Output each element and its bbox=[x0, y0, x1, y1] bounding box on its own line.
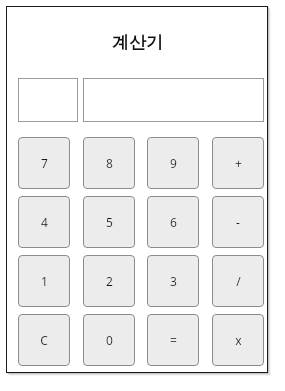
button[interactable]: 1 bbox=[18, 255, 70, 307]
staticText: 0 bbox=[106, 332, 113, 348]
staticText: / bbox=[236, 273, 241, 289]
button[interactable]: 3 bbox=[147, 255, 199, 307]
button[interactable]: 5 bbox=[83, 196, 135, 248]
staticText: 1 bbox=[41, 273, 48, 289]
button[interactable]: 2 bbox=[83, 255, 135, 307]
button[interactable]: C bbox=[18, 314, 70, 366]
staticText: 2 bbox=[106, 273, 113, 289]
button[interactable] bbox=[83, 78, 264, 122]
staticText: x bbox=[235, 332, 242, 348]
button[interactable]: / bbox=[212, 255, 264, 307]
button[interactable]: = bbox=[147, 314, 199, 366]
button[interactable]: 7 bbox=[18, 137, 70, 189]
staticText: + bbox=[235, 155, 242, 171]
button[interactable]: x bbox=[212, 314, 264, 366]
staticText: = bbox=[170, 332, 177, 348]
button[interactable]: 8 bbox=[83, 137, 135, 189]
staticText: 8 bbox=[106, 155, 113, 171]
button[interactable]: 6 bbox=[147, 196, 199, 248]
staticText: 3 bbox=[170, 273, 177, 289]
button[interactable]: 0 bbox=[83, 314, 135, 366]
button[interactable]: + bbox=[212, 137, 264, 189]
button[interactable]: 9 bbox=[147, 137, 199, 189]
staticText: 계산기 bbox=[112, 32, 163, 53]
staticText: 7 bbox=[41, 155, 48, 171]
staticText: 6 bbox=[170, 214, 177, 230]
staticText: 9 bbox=[170, 155, 177, 171]
button[interactable]: 4 bbox=[18, 196, 70, 248]
button[interactable] bbox=[18, 78, 78, 122]
button[interactable]: - bbox=[212, 196, 264, 248]
staticText: 5 bbox=[106, 214, 113, 230]
staticText: 4 bbox=[41, 214, 48, 230]
staticText: - bbox=[236, 214, 240, 230]
staticText: C bbox=[40, 332, 48, 348]
